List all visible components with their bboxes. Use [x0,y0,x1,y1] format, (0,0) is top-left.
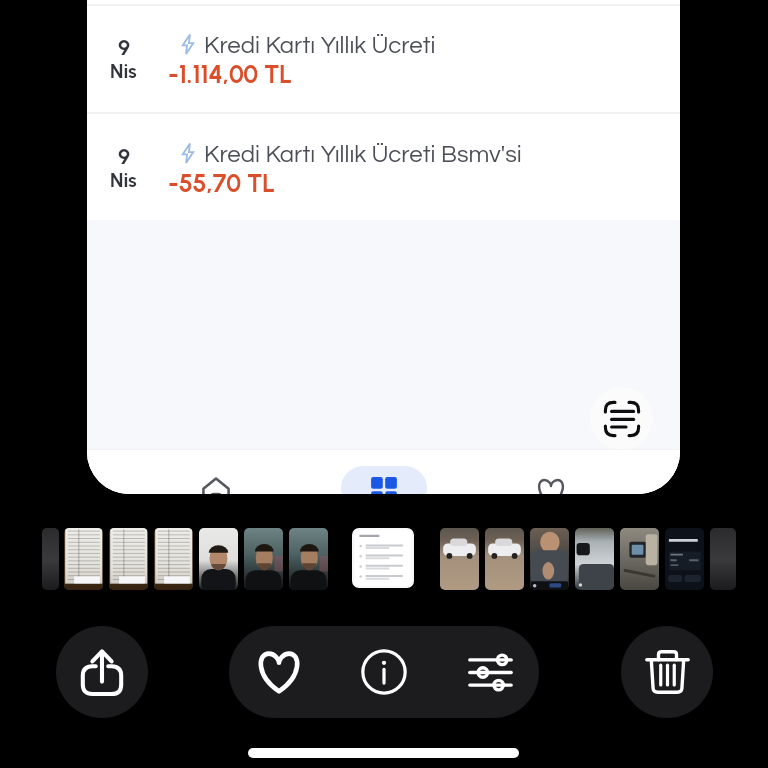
button[interactable]: Home [164,457,268,494]
staticText: -55,70 TL [168,169,276,198]
button[interactable]: Photo 15 [710,528,736,590]
staticText: 9 [118,34,131,60]
button[interactable]: Products [332,457,436,494]
button[interactable]: Delete [621,626,713,718]
button[interactable]: Photo 11 [530,528,569,590]
staticText: -1.114,00 TL [168,60,293,89]
button[interactable]: Info [348,636,420,708]
button[interactable]: Photo 2 [64,528,103,590]
staticText: Kredi Kartı Yıllık Ücreti Bsmv'si [204,142,522,167]
button[interactable]: Photo 3 [109,528,148,590]
button[interactable]: Scan text [590,387,653,450]
button[interactable]: Photo 4 [154,528,193,590]
button[interactable]: Photo 9 [440,528,479,590]
button[interactable]: Photo 7 [289,528,328,590]
button[interactable]: Adjust [454,636,526,708]
staticText: Nis [110,168,137,192]
button[interactable]: Favourite [243,636,315,708]
staticText: Nis [110,59,137,83]
button[interactable]: Photo 6 [244,528,283,590]
button[interactable]: Share [56,626,148,718]
button[interactable]: Photo 5 [199,528,238,590]
staticText: Kredi Kartı Yıllık Ücreti [204,33,436,58]
staticText: 9 [118,143,131,169]
button[interactable]: Photo 14 [665,528,704,590]
button[interactable]: Current photo [352,528,414,588]
button[interactable]: Photo 12 [575,528,614,590]
button[interactable]: Photo 10 [485,528,524,590]
button[interactable]: Photo 1 [42,528,59,590]
button[interactable]: Favourites [499,459,603,494]
button[interactable]: Photo 13 [620,528,659,590]
